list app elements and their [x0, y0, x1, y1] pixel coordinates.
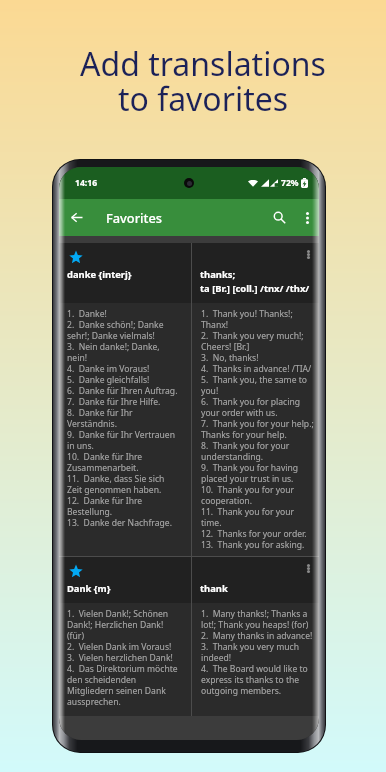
staticText: Favorites — [106, 209, 162, 226]
button[interactable]: Back — [59, 199, 94, 236]
button[interactable]: Search — [262, 199, 296, 236]
staticText: 14:16 — [75, 177, 98, 189]
staticText: 1. Thank you! Thanks!; Thanx! 2. Thank y… — [201, 308, 314, 551]
staticText: danke {interj} — [67, 268, 132, 281]
staticText: Dank {m} — [67, 582, 111, 595]
button[interactable]: Dank {m} — [59, 557, 319, 716]
staticText: Add translations to favorites — [10, 42, 386, 120]
staticText: 1. Many thanks!; Thanks a lot!; Thank yo… — [201, 608, 314, 697]
button[interactable]: Entry options — [301, 246, 315, 262]
staticText: 1. Danke! 2. Danke schön!; Danke sehr!; … — [67, 308, 178, 529]
button[interactable]: Entry options — [301, 560, 315, 576]
staticText: 72% — [281, 177, 299, 189]
button[interactable]: danke {interj} — [59, 243, 319, 556]
button[interactable]: More options — [296, 199, 319, 236]
staticText: thank — [200, 582, 228, 595]
staticText: thanks; ta [Br.] [coll.] /tnx/ /thx/ — [200, 268, 310, 294]
staticText: 1. Vielen Dank!; Schönen Dank!; Herzlich… — [67, 608, 178, 708]
